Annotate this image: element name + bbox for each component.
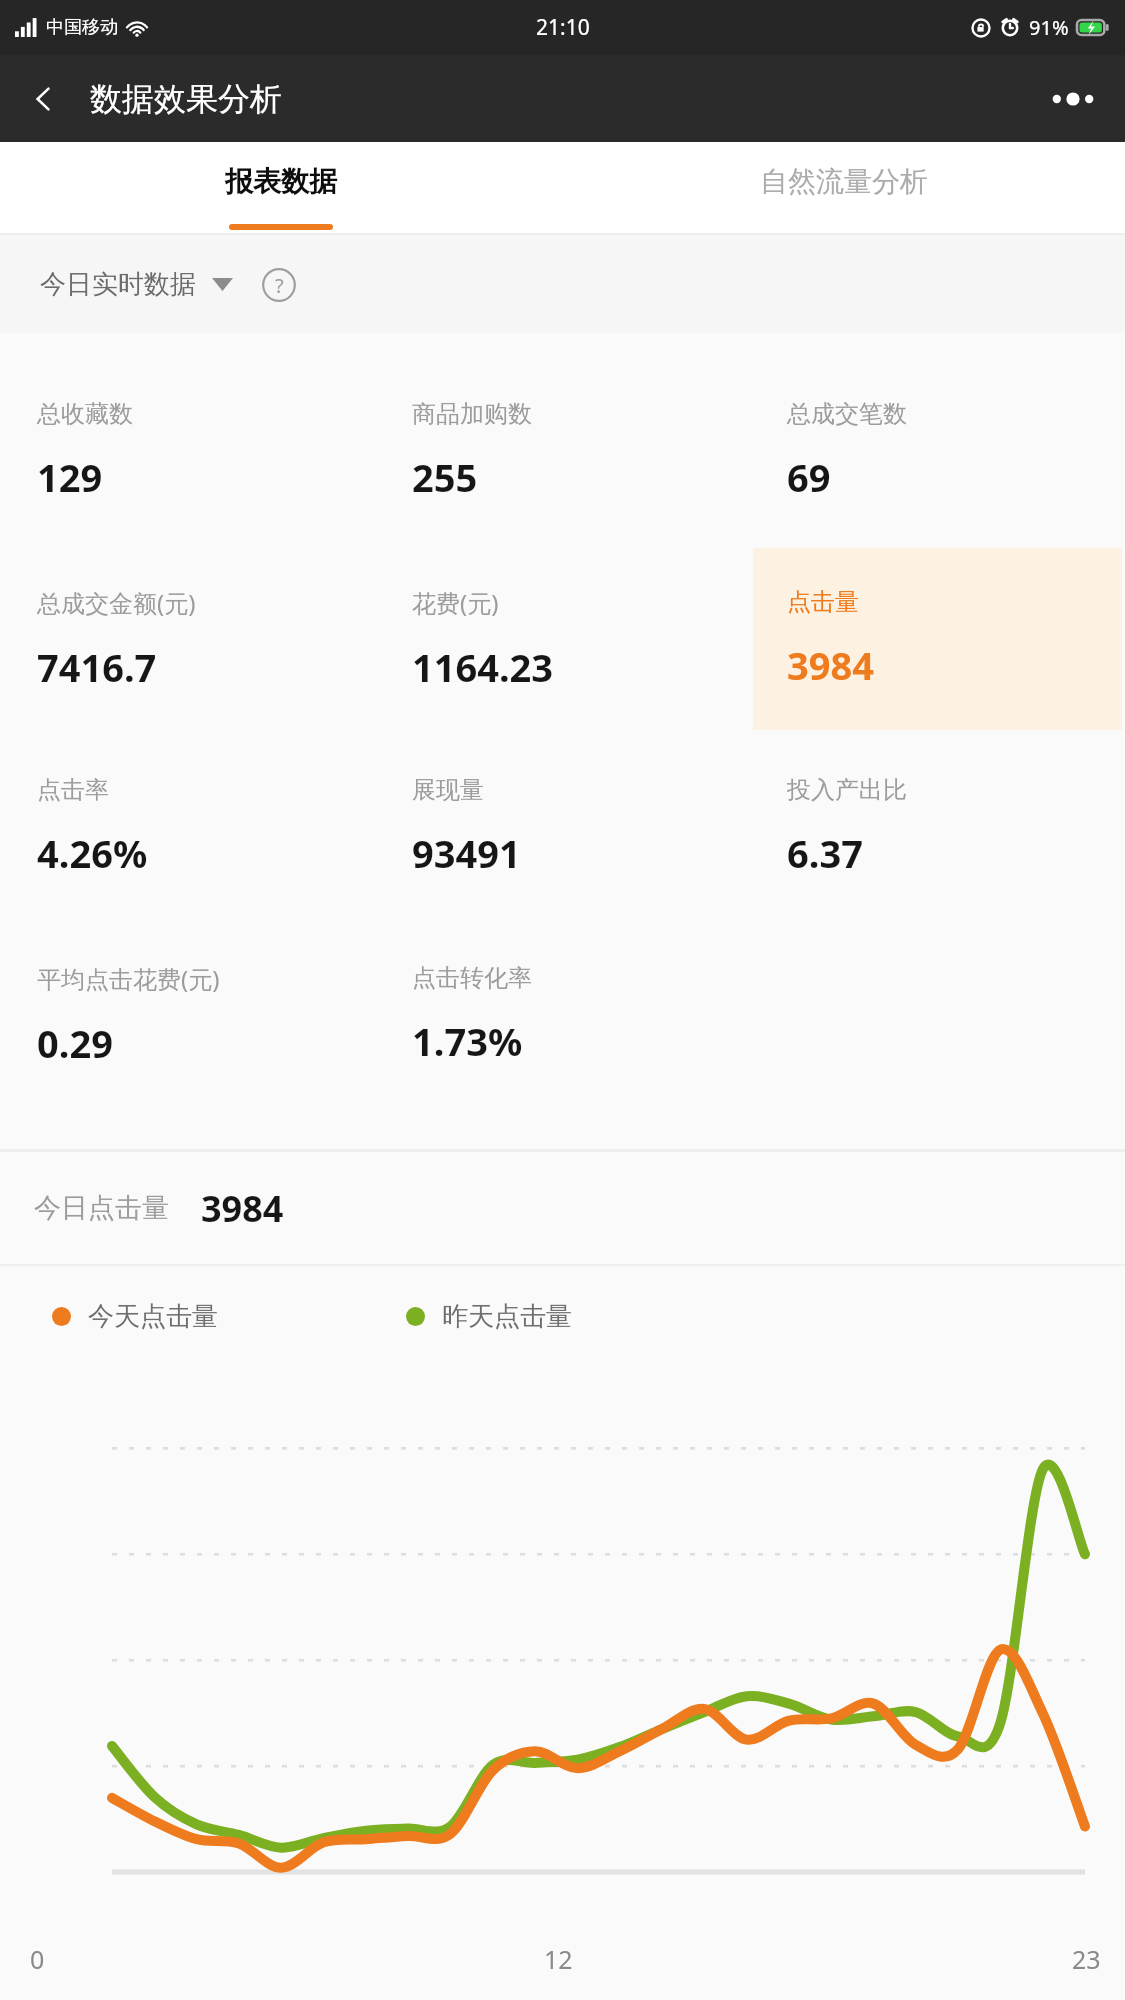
button[interactable]: 点击转化率 <box>378 924 747 1106</box>
staticText: 1164.23 <box>412 641 554 693</box>
staticText: 自然流量分析 <box>760 164 928 199</box>
button[interactable]: 花费(元) <box>378 548 747 730</box>
staticText: 0.29 <box>37 1017 113 1069</box>
button[interactable]: 总收藏数 <box>3 360 372 542</box>
staticText: 投入产出比 <box>787 775 907 805</box>
staticText: 69 <box>787 451 831 503</box>
staticText: 91% <box>1029 14 1069 41</box>
staticText: 花费(元) <box>412 586 499 619</box>
staticText: 129 <box>37 451 103 503</box>
staticText: 数据效果分析 <box>90 79 282 119</box>
button[interactable]: 展现量 <box>378 736 747 918</box>
staticText: 1.73% <box>412 1015 523 1067</box>
staticText: 12 <box>544 1942 573 1976</box>
staticText: 0 <box>30 1942 45 1976</box>
button[interactable]: Back <box>16 71 72 127</box>
staticText: 23 <box>1072 1942 1101 1976</box>
button[interactable]: 点击量 <box>753 548 1122 730</box>
button[interactable]: 商品加购数 <box>378 360 747 542</box>
staticText: 4.26% <box>37 827 148 879</box>
staticText: 今天点击量 <box>88 1300 218 1333</box>
staticText: 点击率 <box>37 775 109 805</box>
staticText: 商品加购数 <box>412 399 532 429</box>
staticText: 展现量 <box>412 775 484 805</box>
staticText: 255 <box>412 451 478 503</box>
staticText: 报表数据 <box>225 164 337 199</box>
staticText: 点击转化率 <box>412 963 532 993</box>
staticText: 6.37 <box>787 827 863 879</box>
button[interactable]: More options <box>1041 67 1105 131</box>
button[interactable]: 报表数据 <box>0 142 562 235</box>
staticText: 3984 <box>787 639 874 691</box>
button[interactable]: Help <box>257 263 301 307</box>
button[interactable]: 总成交金额(元) <box>3 548 372 730</box>
staticText: 平均点击花费(元) <box>37 962 220 995</box>
button[interactable]: 今日实时数据 <box>34 260 239 309</box>
button[interactable]: 平均点击花费(元) <box>3 924 372 1106</box>
button[interactable]: 总成交笔数 <box>753 360 1122 542</box>
staticText: 总收藏数 <box>37 399 133 429</box>
staticText: 总成交金额(元) <box>37 586 196 619</box>
button[interactable]: 自然流量分析 <box>562 142 1125 235</box>
staticText: 昨天点击量 <box>442 1300 572 1333</box>
staticText: 中国移动 <box>46 16 118 39</box>
button[interactable]: 投入产出比 <box>753 736 1122 918</box>
staticText: 3984 <box>201 1184 284 1233</box>
button[interactable]: 点击率 <box>3 736 372 918</box>
staticText: 7416.7 <box>37 641 157 693</box>
staticText: ? <box>275 272 284 299</box>
staticText: 21:10 <box>536 13 590 42</box>
staticText: 今日点击量 <box>34 1191 169 1225</box>
staticText: 93491 <box>412 827 521 879</box>
staticText: 今日实时数据 <box>40 268 196 301</box>
staticText: 总成交笔数 <box>787 399 907 429</box>
staticText: 点击量 <box>787 587 859 617</box>
